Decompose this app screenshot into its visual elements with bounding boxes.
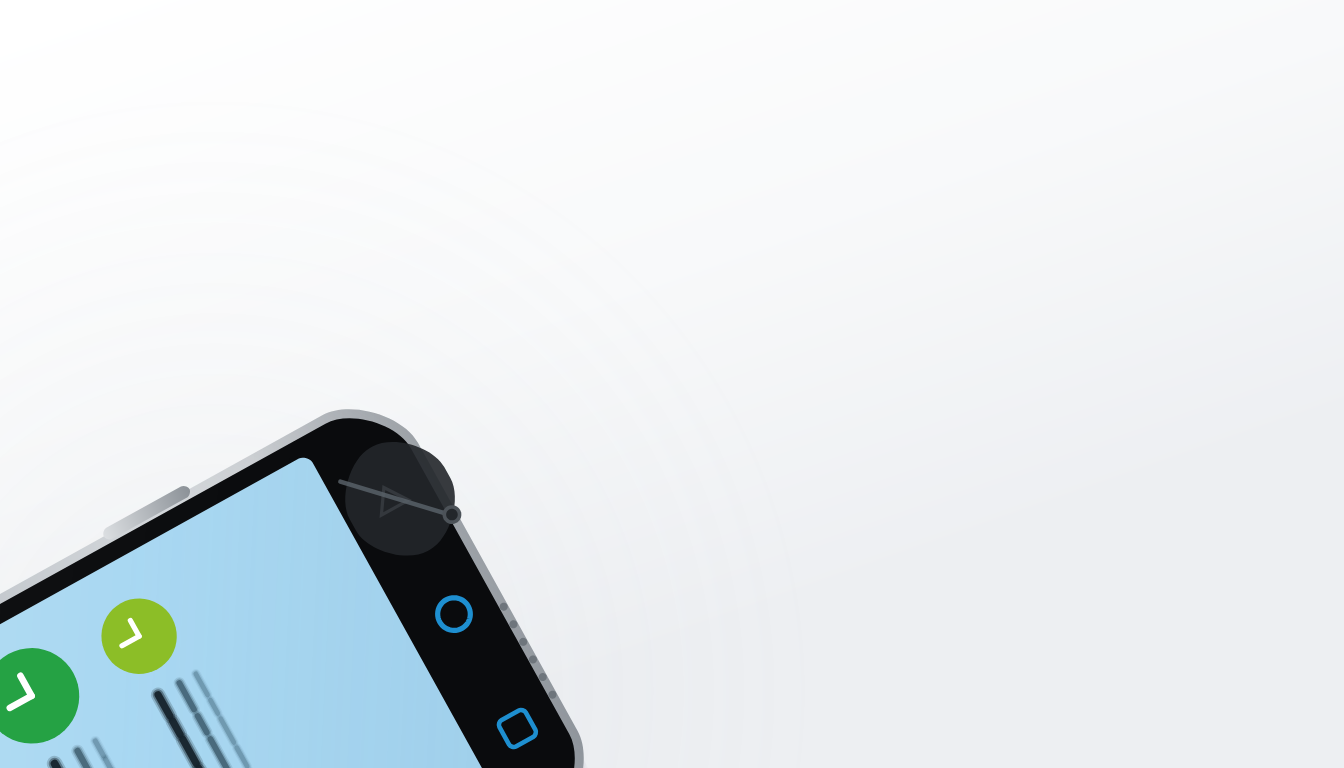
- button[interactable]: Photo of phone showing chat list: [0, 0, 1344, 768]
